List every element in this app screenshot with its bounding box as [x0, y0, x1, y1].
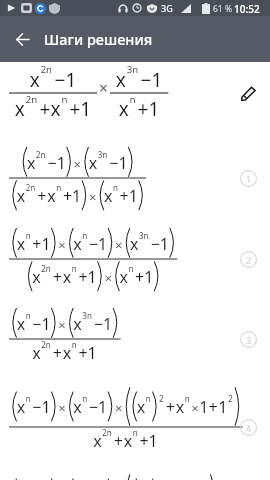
staticText: 2 — [246, 254, 252, 266]
staticText: 10:52 — [234, 2, 260, 16]
button[interactable]: Back — [0, 17, 44, 61]
staticText: 4 — [246, 422, 252, 434]
button[interactable]: 4 — [228, 407, 268, 447]
button[interactable]: 1 — [228, 158, 268, 198]
button[interactable]: 2 — [228, 239, 268, 279]
staticText: 3G — [161, 2, 173, 14]
staticText: 1 — [246, 173, 252, 185]
staticText: 3 — [246, 334, 252, 346]
staticText: 61 % — [213, 3, 232, 15]
button[interactable]: Edit — [228, 73, 268, 113]
staticText: Шаги решения — [44, 29, 153, 49]
button[interactable]: 3 — [228, 319, 268, 359]
